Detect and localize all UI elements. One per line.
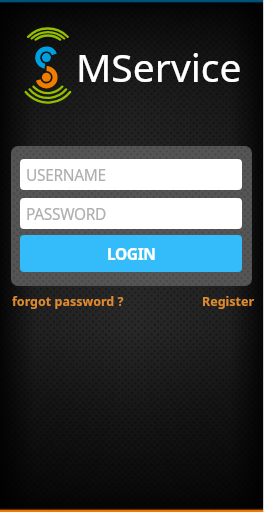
staticText: MService — [76, 40, 242, 93]
button[interactable]: USERNAME — [20, 159, 242, 190]
button[interactable]: Register — [202, 293, 255, 310]
button[interactable]: LOGIN — [20, 235, 242, 272]
button[interactable]: forgot password ? — [12, 293, 124, 310]
other: MService logo — [0, 0, 264, 512]
staticText: Register — [202, 293, 255, 310]
staticText: USERNAME — [26, 164, 106, 185]
staticText: forgot password ? — [12, 293, 124, 310]
staticText: LOGIN — [107, 243, 156, 264]
staticText: PASSWORD — [26, 203, 107, 224]
button[interactable]: PASSWORD — [20, 198, 242, 229]
